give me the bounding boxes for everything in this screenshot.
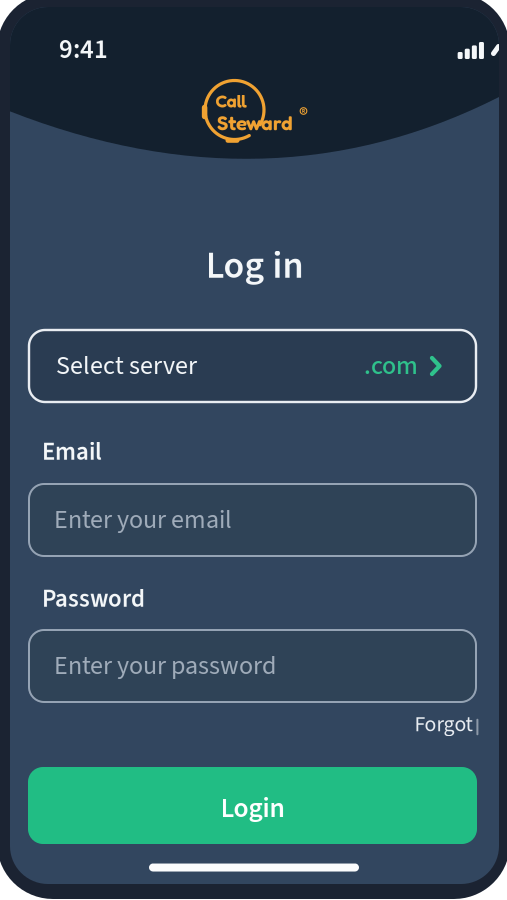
staticText: Forgot <box>414 709 472 740</box>
button[interactable]: Enter your email <box>29 484 476 556</box>
staticText: Enter your email <box>54 501 232 538</box>
staticText: Steward <box>217 110 293 135</box>
staticText: Password <box>42 581 145 617</box>
button[interactable]: Enter your password <box>29 630 476 702</box>
button[interactable]: Select server <box>29 330 476 402</box>
staticText: Log in <box>205 239 303 293</box>
staticText: Email <box>42 434 102 470</box>
button[interactable]: Login <box>28 767 477 844</box>
button[interactable]: Forgot <box>414 709 472 740</box>
staticText: Call <box>215 90 246 112</box>
staticText: R <box>302 108 305 114</box>
staticText: Login <box>220 789 284 828</box>
staticText: 9:41 <box>59 31 108 69</box>
staticText: .com <box>364 347 418 384</box>
staticText: Enter your password <box>54 647 276 684</box>
staticText: Select server <box>56 347 197 384</box>
